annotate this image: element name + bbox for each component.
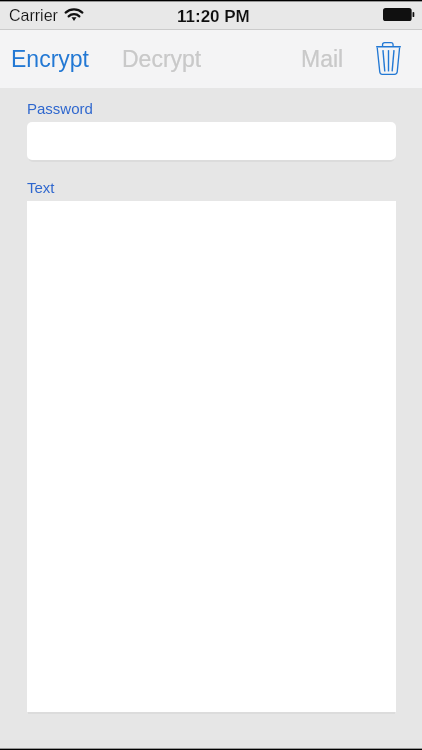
staticText: Decrypt [122,46,202,72]
button[interactable]: Decrypt [110,30,214,88]
staticText: 11:20 PM [177,7,250,26]
staticText: Mail [301,46,344,72]
button[interactable]: Mail [284,30,360,88]
staticText: Password [27,100,93,117]
button[interactable]: Delete [365,30,411,88]
staticText: Encrypt [11,46,89,72]
staticText: Text [27,179,55,196]
button[interactable]: Encrypt [0,30,102,88]
staticText: Carrier [9,7,58,25]
